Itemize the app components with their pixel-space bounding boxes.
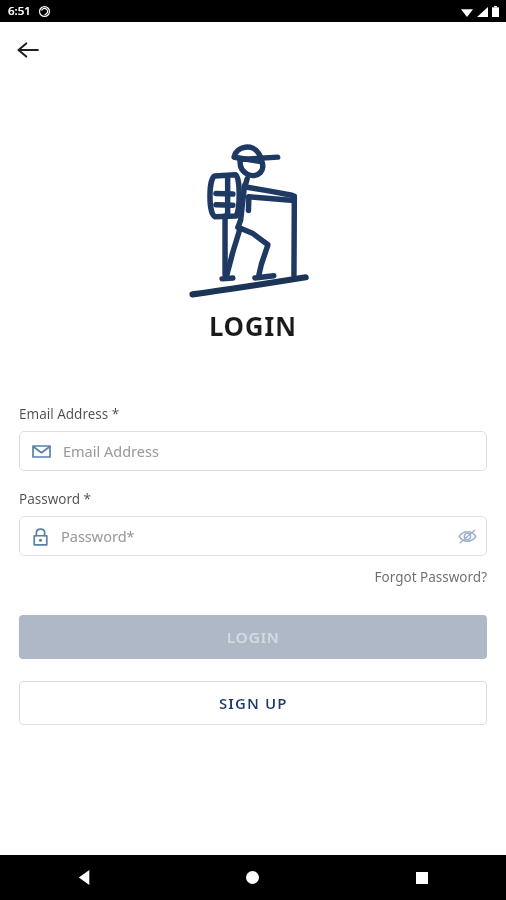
button[interactable]: Home bbox=[168, 855, 337, 900]
button[interactable]: Password* bbox=[19, 516, 487, 556]
button[interactable]: LOGIN bbox=[19, 615, 487, 659]
button[interactable]: Recents bbox=[337, 855, 506, 900]
staticText: LOGIN bbox=[227, 627, 280, 647]
staticText: LOGIN bbox=[209, 308, 297, 343]
button[interactable]: SIGN UP bbox=[19, 681, 487, 725]
staticText: SIGN UP bbox=[219, 693, 288, 713]
staticText: Password* bbox=[61, 526, 135, 546]
button[interactable]: Email Address bbox=[19, 431, 487, 471]
button[interactable]: Back bbox=[6, 28, 50, 72]
staticText: Password * bbox=[19, 490, 92, 508]
staticText: Email Address bbox=[63, 441, 159, 461]
button[interactable]: Back bbox=[0, 855, 168, 900]
button[interactable]: Show password bbox=[447, 516, 487, 556]
staticText: Email Address * bbox=[19, 405, 120, 423]
staticText: 6:51 bbox=[8, 3, 31, 19]
button[interactable]: Forgot Password? bbox=[374, 568, 487, 586]
staticText: Forgot Password? bbox=[374, 568, 487, 586]
